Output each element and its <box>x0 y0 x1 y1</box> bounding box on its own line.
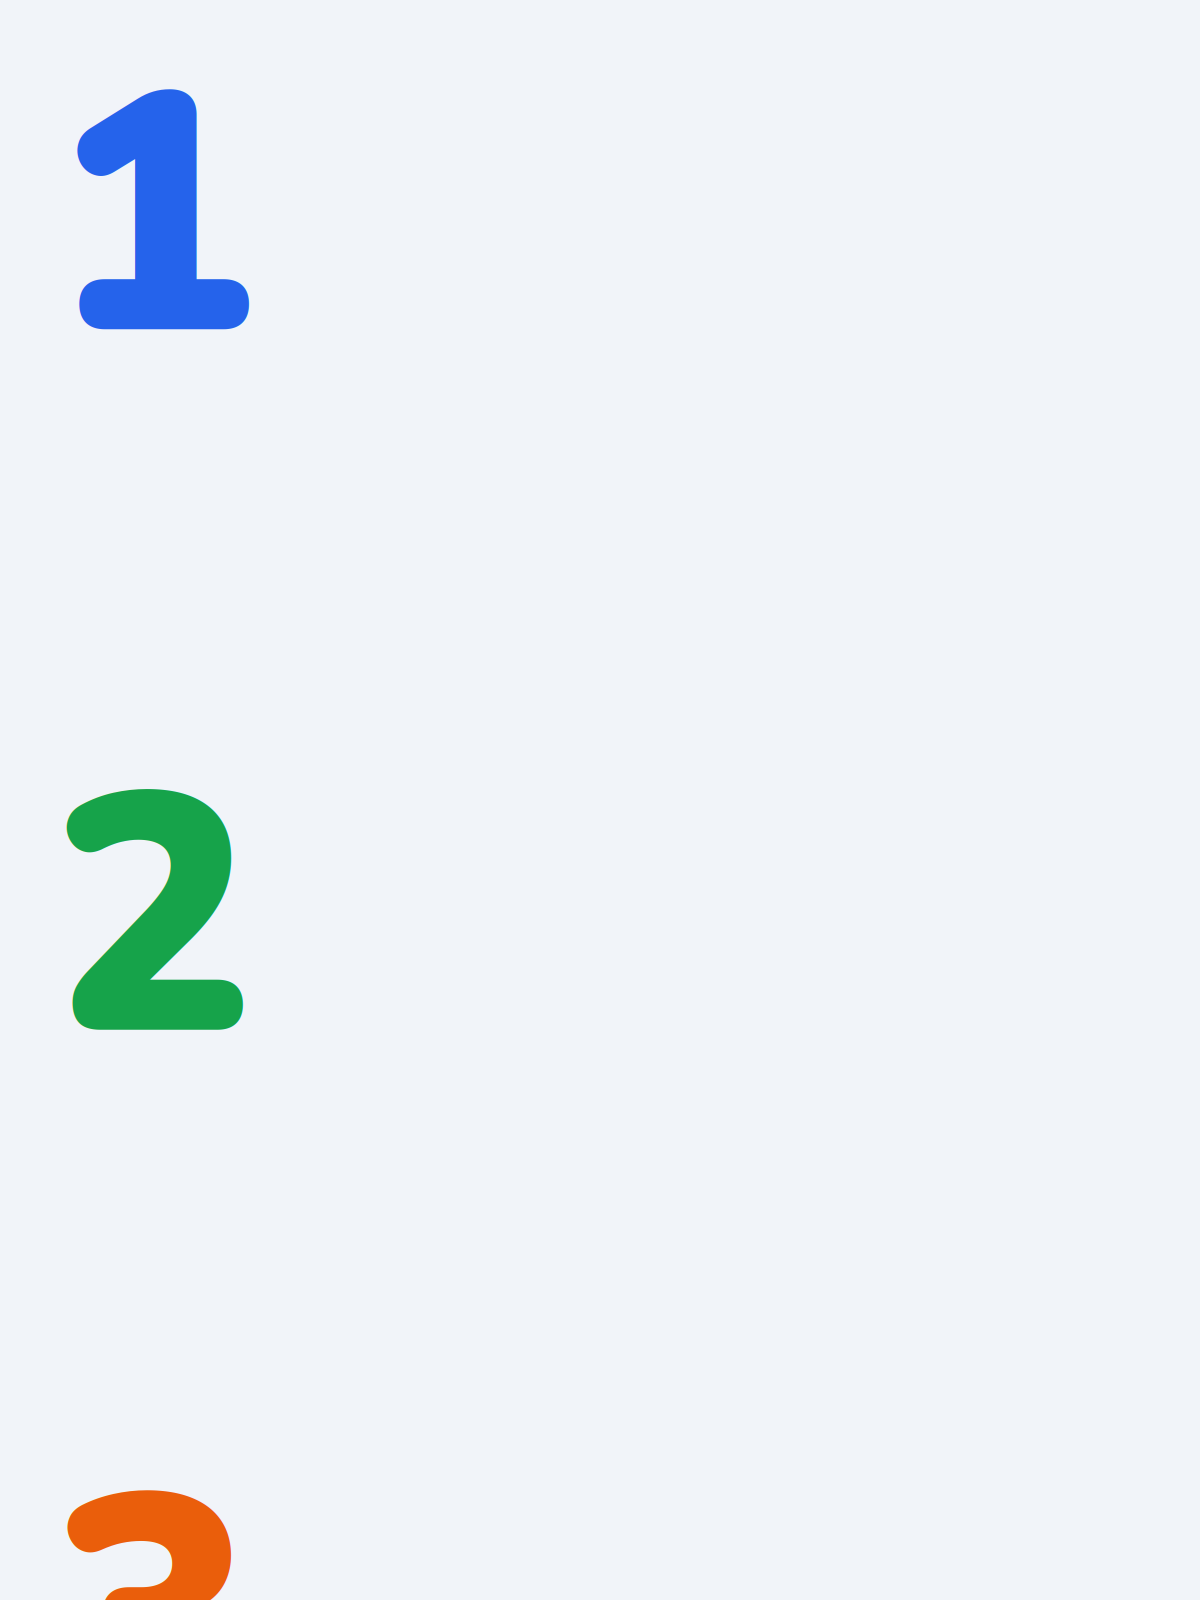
staticText: 1 <box>52 0 254 448</box>
button[interactable]: 1 <box>52 0 254 448</box>
staticText: 2 <box>52 690 254 1148</box>
staticText: 3 <box>52 1390 254 1600</box>
button[interactable]: 2 <box>52 690 254 1148</box>
button[interactable]: 3 <box>52 1390 254 1600</box>
